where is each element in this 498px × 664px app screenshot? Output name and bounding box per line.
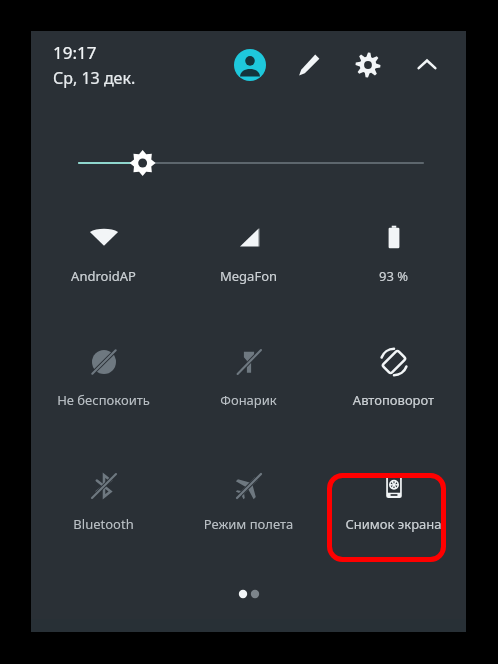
button[interactable]: AndroidAP: [31, 219, 176, 309]
button[interactable]: Bluetooth: [31, 467, 176, 557]
staticText: AndroidAP: [31, 267, 176, 285]
button[interactable]: Settings: [351, 48, 385, 82]
staticText: MegaFon: [176, 267, 321, 285]
button[interactable]: Не беспокоить: [31, 343, 176, 433]
staticText: Режим полета: [176, 515, 321, 533]
staticText: Bluetooth: [31, 515, 176, 533]
button[interactable]: User account: [233, 48, 267, 82]
button[interactable]: Edit: [292, 48, 326, 82]
button[interactable]: Режим полета: [176, 467, 321, 557]
button[interactable]: MegaFon: [176, 219, 321, 309]
button[interactable]: Фонарик: [176, 343, 321, 433]
staticText: 93 %: [321, 267, 466, 285]
button[interactable]: Снимок экрана: [321, 467, 466, 557]
staticText: Автоповорот: [321, 391, 466, 409]
staticText: 19:17: [53, 41, 97, 64]
button[interactable]: Collapse: [410, 48, 444, 82]
staticText: Не беспокоить: [31, 391, 176, 409]
button[interactable]: Автоповорот: [321, 343, 466, 433]
button[interactable]: Brightness: [31, 143, 466, 183]
staticText: Снимок экрана: [321, 515, 466, 533]
staticText: Ср, 13 дек.: [53, 67, 136, 89]
staticText: Фонарик: [176, 391, 321, 409]
button[interactable]: 93 %: [321, 219, 466, 309]
